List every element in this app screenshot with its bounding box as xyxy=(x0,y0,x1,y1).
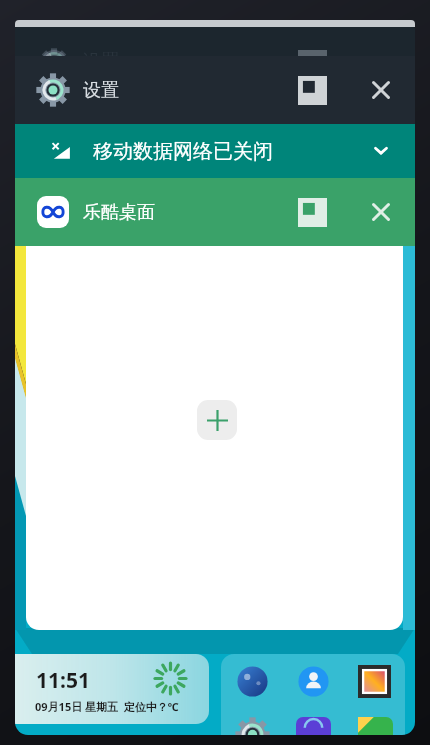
button[interactable]: Pin app xyxy=(292,70,332,110)
button[interactable]: Games xyxy=(358,717,393,735)
staticText: 乐酷桌面 xyxy=(83,201,155,224)
button[interactable]: Settings xyxy=(235,717,270,735)
button[interactable]: Themes xyxy=(296,717,331,735)
button[interactable]: Contacts xyxy=(296,664,331,699)
button[interactable]: 乐酷桌面 xyxy=(15,178,415,246)
button[interactable]: 移动数据网络已关闭 xyxy=(15,124,415,178)
staticText: 移动数据网络已关闭 xyxy=(93,139,273,164)
button[interactable]: Close app xyxy=(361,192,401,232)
staticText: 09月15日 星期五 定位中？℃ xyxy=(35,699,179,714)
button[interactable]: Add xyxy=(197,400,237,440)
button[interactable]: Pin app xyxy=(292,192,332,232)
button[interactable]: 11:51 xyxy=(15,654,209,724)
staticText: 设置 xyxy=(82,50,120,56)
button[interactable]: Close app xyxy=(361,70,401,110)
button[interactable]: 设置 xyxy=(15,56,415,124)
button[interactable]: Browser xyxy=(235,664,270,699)
button[interactable]: Gallery xyxy=(358,665,391,698)
staticText: 11:51 xyxy=(36,666,90,695)
staticText: 设置 xyxy=(83,79,119,102)
